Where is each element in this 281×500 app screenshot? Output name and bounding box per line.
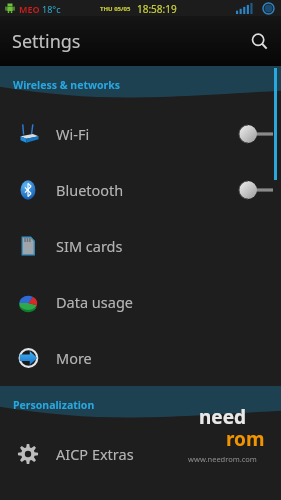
staticText: THU 05/05	[100, 5, 131, 13]
button[interactable]: Wi-Fi toggle	[235, 117, 281, 151]
staticText: More	[56, 348, 92, 368]
button[interactable]: Search	[237, 19, 281, 63]
staticText: AICP Extras	[56, 444, 134, 464]
staticText: Personalization	[13, 398, 95, 412]
button[interactable]: Wi-Fi	[0, 106, 281, 162]
button[interactable]: Bluetooth toggle	[235, 173, 281, 207]
button[interactable]: AICP Extras	[0, 426, 281, 482]
button[interactable]: Data usage	[0, 274, 281, 330]
staticText: Bluetooth	[56, 180, 124, 200]
staticText: www.needrom.com	[170, 454, 275, 464]
button[interactable]: More	[0, 330, 281, 386]
staticText: MEO	[19, 3, 40, 15]
staticText: Wireless & networks	[13, 78, 120, 92]
staticText: rom	[226, 426, 265, 452]
button[interactable]: Bluetooth	[0, 162, 281, 218]
staticText: Data usage	[56, 292, 133, 312]
button[interactable]: SIM cards	[0, 218, 281, 274]
staticText: Settings	[12, 29, 81, 54]
staticText: SIM cards	[56, 236, 123, 256]
staticText: Wi-Fi	[56, 124, 90, 144]
staticText: 18:58:19	[137, 2, 177, 16]
staticText: 18°c	[42, 3, 61, 15]
staticText: need	[199, 404, 247, 430]
